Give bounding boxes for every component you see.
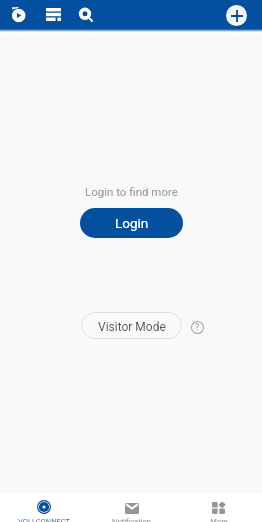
staticText: Notification xyxy=(112,517,151,522)
staticText: VOLLCONNECT xyxy=(18,517,70,522)
staticText: Login to find more xyxy=(85,185,178,198)
button[interactable]: Login xyxy=(80,208,183,238)
button[interactable]: Articles xyxy=(42,3,64,25)
button[interactable]: Help xyxy=(187,317,207,337)
button[interactable]: Search xyxy=(74,3,96,25)
button[interactable]: VOLLCONNECT xyxy=(0,494,88,522)
staticText: Login xyxy=(115,215,149,231)
staticText: Visitor Mode xyxy=(98,320,166,334)
button[interactable]: Add xyxy=(226,5,247,26)
button[interactable]: Notification xyxy=(88,494,175,522)
button[interactable]: Visitor Mode xyxy=(81,312,182,339)
staticText: More xyxy=(210,517,228,522)
button[interactable]: More xyxy=(175,494,262,522)
button[interactable]: Live xyxy=(6,3,31,28)
staticText: ? xyxy=(195,322,200,333)
